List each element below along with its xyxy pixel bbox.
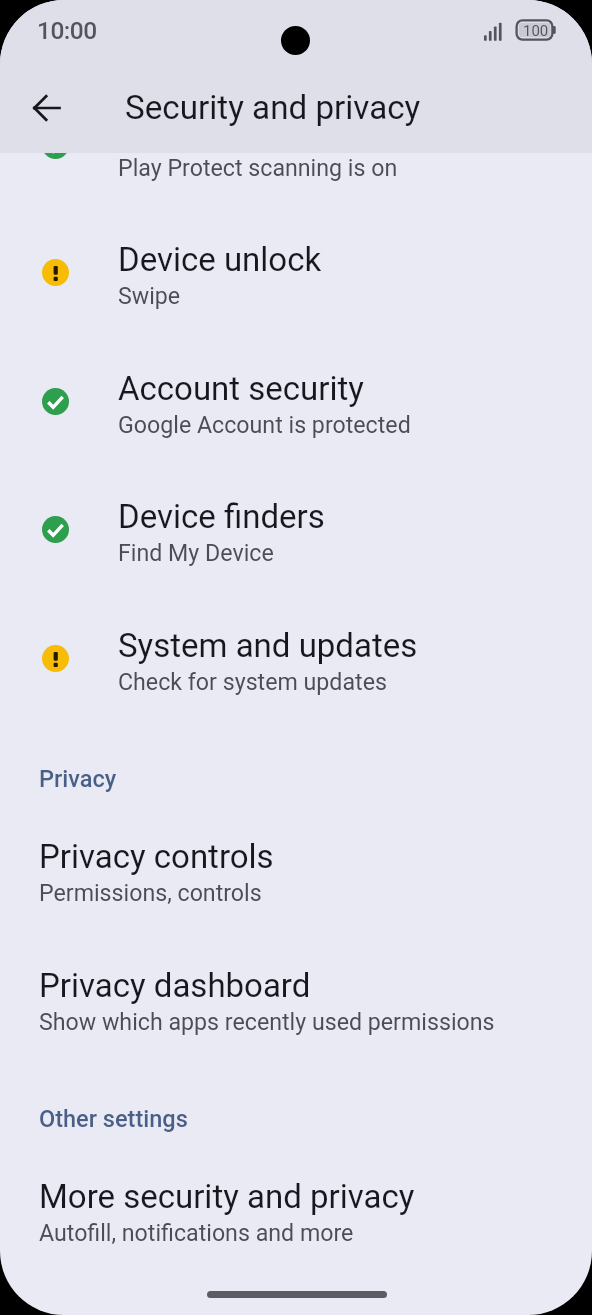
staticText: Swipe [118, 282, 181, 309]
button[interactable]: More security and privacy [0, 1140, 592, 1268]
staticText: Permissions, controls [39, 879, 262, 906]
button[interactable]: System and updates [0, 589, 592, 717]
staticText: Device unlock [118, 240, 322, 279]
staticText: Google Play Protect [118, 112, 408, 151]
button[interactable]: Device unlock [0, 203, 592, 331]
staticText: Play Protect scanning is on [118, 154, 398, 181]
button[interactable]: Navigate up [32, 94, 60, 122]
staticText: Account security [118, 369, 364, 408]
staticText: Google Account is protected [118, 411, 411, 438]
staticText: More security and privacy [39, 1177, 415, 1216]
button[interactable]: Privacy dashboard [0, 929, 592, 1057]
button[interactable]: Privacy controls [0, 800, 592, 928]
staticText: Find My Device [118, 539, 274, 566]
button[interactable]: Google Play Protect [0, 75, 592, 203]
staticText: Autofill, notifications and more [39, 1219, 354, 1246]
staticText: Other settings [39, 1105, 188, 1133]
button[interactable]: Account security [0, 332, 592, 460]
staticText: Privacy [39, 765, 117, 793]
staticText: Check for system updates [118, 668, 387, 695]
staticText: Privacy controls [39, 837, 274, 876]
staticText: Privacy dashboard [39, 966, 311, 1005]
staticText: System and updates [118, 626, 418, 665]
staticText: Show which apps recently used permission… [39, 1008, 495, 1035]
button[interactable]: Device finders [0, 460, 592, 588]
staticText: Device finders [118, 497, 325, 536]
staticText: 10:00 [37, 16, 97, 45]
staticText: 100 [523, 22, 549, 40]
staticText: Security and privacy [125, 88, 421, 127]
